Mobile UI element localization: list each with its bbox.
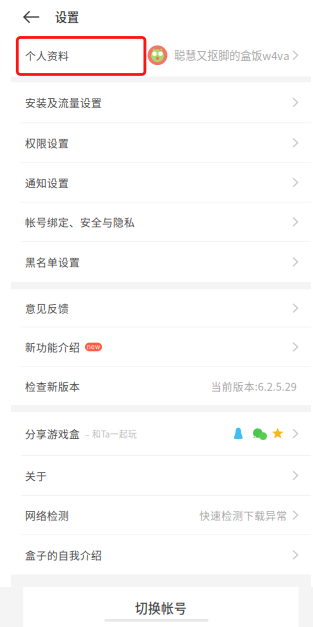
button[interactable]: 分享游戏盒 [0, 412, 313, 455]
staticText: 设置 [55, 8, 79, 26]
button[interactable]: 检查新版本 [0, 367, 313, 405]
staticText: – 和Ta一起玩 [85, 427, 137, 440]
button[interactable]: 盒子的自我介绍 [0, 535, 313, 574]
staticText: 权限设置 [25, 135, 69, 150]
button[interactable]: 黑名单设置 [0, 242, 313, 282]
button[interactable]: 返回 [0, 0, 55, 34]
button[interactable]: 权限设置 [0, 123, 313, 162]
button[interactable]: 切换帐号 [23, 587, 298, 627]
staticText: 关于 [25, 468, 47, 483]
button[interactable]: 帐号绑定、安全与隐私 [0, 203, 313, 241]
staticText: 黑名单设置 [25, 254, 80, 270]
button[interactable]: 个人资料 [0, 34, 313, 76]
staticText: 个人资料 [25, 47, 69, 63]
staticText: 快速检测下载异常 [199, 507, 287, 523]
staticText: 分享游戏盒 [25, 426, 80, 441]
staticText: new [87, 343, 100, 351]
button[interactable]: 安装及流量设置 [0, 82, 313, 122]
button[interactable]: 新功能介绍 [0, 328, 313, 366]
staticText: 帐号绑定、安全与隐私 [25, 214, 135, 229]
button[interactable]: 网络检测 [0, 496, 313, 534]
staticText: 网络检测 [25, 507, 69, 523]
button[interactable]: 意见反馈 [0, 289, 313, 327]
button[interactable]: 通知设置 [0, 163, 313, 202]
staticText: 新功能介绍 [25, 339, 80, 355]
staticText: 当前版本:6.2.5.29 [211, 378, 297, 394]
staticText: 检查新版本 [25, 378, 80, 394]
staticText: 盒子的自我介绍 [25, 547, 102, 563]
staticText: 通知设置 [25, 175, 69, 190]
staticText: 切换帐号 [135, 598, 187, 616]
staticText: 聪慧又抠脚的盒饭w4va [174, 47, 289, 63]
button[interactable]: 关于 [0, 456, 313, 495]
staticText: 意见反馈 [25, 300, 69, 316]
staticText: 安装及流量设置 [25, 95, 102, 110]
